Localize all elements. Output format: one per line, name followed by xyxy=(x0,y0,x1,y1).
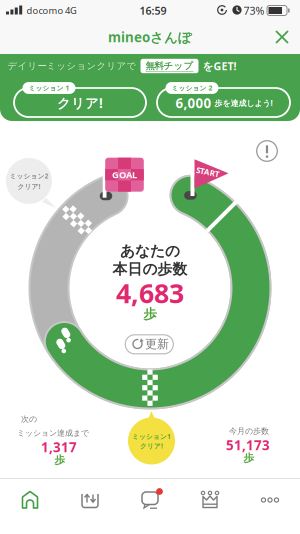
staticText: 1,317 xyxy=(41,438,77,456)
staticText: あなたの xyxy=(120,242,180,260)
button[interactable]: ホーム xyxy=(0,0,300,534)
staticText: 4G xyxy=(65,4,77,17)
button[interactable]: 6,000 xyxy=(0,0,300,534)
staticText: mineoさんぽ xyxy=(108,28,192,46)
staticText: GOAL xyxy=(112,168,137,181)
button[interactable]: 閉じる xyxy=(267,22,297,52)
staticText: ミッション1 xyxy=(132,432,171,441)
staticText: 6,000 xyxy=(175,94,211,112)
button[interactable]: デイリーミッションクリアで xyxy=(7,59,236,73)
staticText: 次の xyxy=(21,414,37,424)
staticText: 73% xyxy=(243,3,264,18)
button[interactable]: その他 xyxy=(0,0,300,534)
staticText: 歩 xyxy=(143,306,156,322)
button[interactable]: 情報 xyxy=(253,137,281,165)
staticText: 本日の歩数 xyxy=(112,260,187,278)
staticText: 51,173 xyxy=(226,436,270,454)
button[interactable]: ランキング xyxy=(0,0,300,534)
staticText: 今月の歩数 xyxy=(229,426,269,436)
button[interactable]: クリア! xyxy=(0,0,300,534)
staticText: ミッション 2 xyxy=(171,84,212,92)
staticText: 歩 xyxy=(54,453,65,466)
staticText: をGET! xyxy=(202,59,236,73)
staticText: ミッション 1 xyxy=(28,84,69,92)
staticText: docomo xyxy=(26,4,63,17)
staticText: クリア! xyxy=(140,442,163,450)
staticText: 更新 xyxy=(145,337,169,351)
staticText: 歩を達成しよう! xyxy=(214,98,272,108)
staticText: ミッション達成まで xyxy=(17,428,89,438)
staticText: デイリーミッションクリアで xyxy=(7,60,136,72)
staticText: ミッション2 xyxy=(9,172,48,180)
staticText: START xyxy=(196,167,220,177)
staticText: クリア! xyxy=(57,94,103,112)
staticText: 無料チップ xyxy=(145,60,193,72)
button[interactable]: チャージ xyxy=(0,0,300,534)
staticText: クリア! xyxy=(17,182,40,191)
staticText: 4,683 xyxy=(116,275,184,311)
button[interactable]: メッセージ xyxy=(0,0,300,534)
button[interactable]: 更新 xyxy=(124,334,174,354)
staticText: 歩 xyxy=(243,451,254,464)
staticText: 16:59 xyxy=(139,3,166,18)
